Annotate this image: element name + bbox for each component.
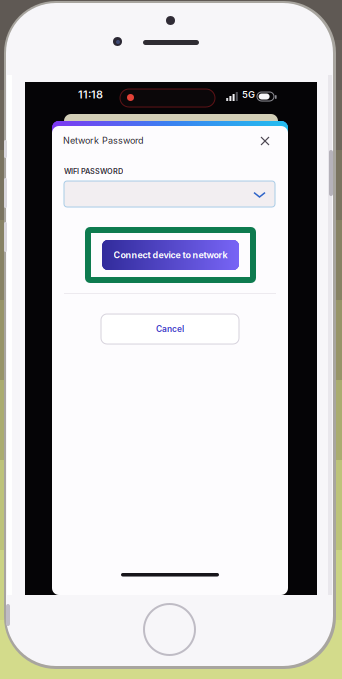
- staticText: 5G: [242, 89, 255, 100]
- staticText: Cancel: [156, 324, 184, 334]
- staticText: Connect device to network: [113, 250, 227, 260]
- button[interactable]: Connect device to network: [102, 240, 239, 270]
- staticText: 11:18: [78, 88, 103, 101]
- button[interactable]: Close: [254, 130, 276, 152]
- button[interactable]: Wifi password: [64, 181, 275, 207]
- button[interactable]: Cancel: [101, 314, 239, 344]
- staticText: Network Password: [63, 135, 144, 146]
- staticText: WIFI PASSWORD: [64, 167, 123, 176]
